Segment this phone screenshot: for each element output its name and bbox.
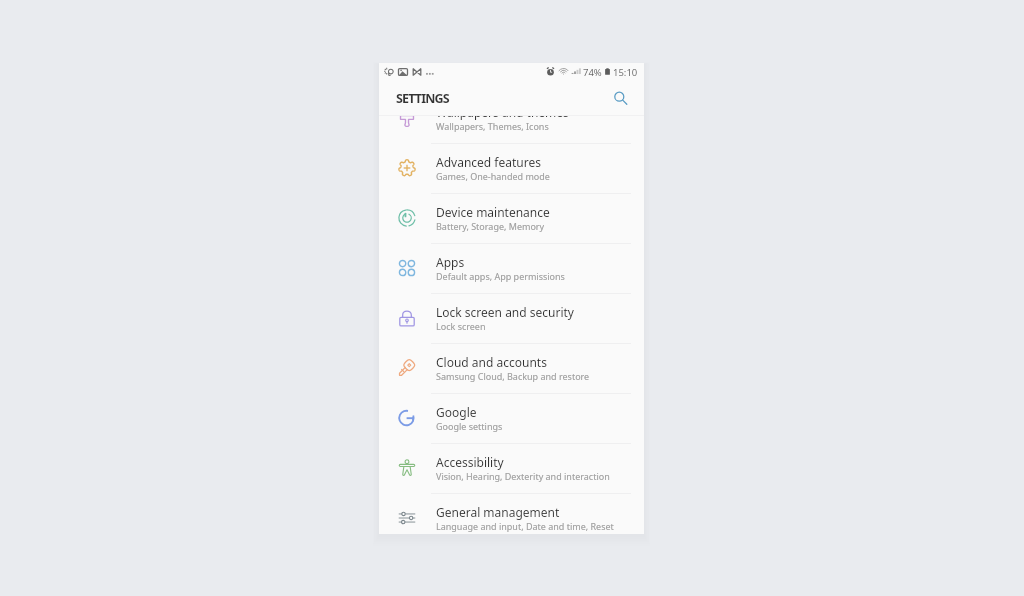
staticText: Advanced features [436,154,541,170]
staticText: Games, One-handed mode [436,170,550,182]
button[interactable]: Search [608,86,632,110]
staticText: Apps [436,254,465,270]
staticText: SETTINGS [396,90,449,107]
staticText: 15:10 [613,66,638,79]
staticText: Battery, Storage, Memory [436,220,545,232]
staticText: General management [436,504,560,520]
staticText: Device maintenance [436,204,550,220]
staticText: Accessibility [436,454,504,470]
staticText: Google settings [436,420,503,432]
button[interactable]: Advanced features [379,144,644,193]
staticText: 74% [583,66,602,79]
button[interactable]: Apps [379,244,644,293]
staticText: Lock screen [436,320,486,332]
button[interactable]: Lock screen and security [379,294,644,343]
staticText: Language and input, Date and time, Reset [436,520,614,532]
staticText: Vision, Hearing, Dexterity and interacti… [436,470,610,482]
staticText: Wallpapers, Themes, Icons [436,120,549,132]
staticText: Samsung Cloud, Backup and restore [436,370,590,382]
button[interactable]: Cloud and accounts [379,344,644,393]
staticText: Lock screen and security [436,304,574,320]
button[interactable]: Device maintenance [379,194,644,243]
staticText: Wallpapers and themes [436,115,569,120]
staticText: Google [436,404,477,420]
staticText: Cloud and accounts [436,354,547,370]
button[interactable]: Accessibility [379,444,644,493]
button[interactable]: Google [379,394,644,443]
staticText: Default apps, App permissions [436,270,565,282]
button[interactable]: Wallpapers and themes [379,115,644,143]
button[interactable]: General management [379,494,644,513]
